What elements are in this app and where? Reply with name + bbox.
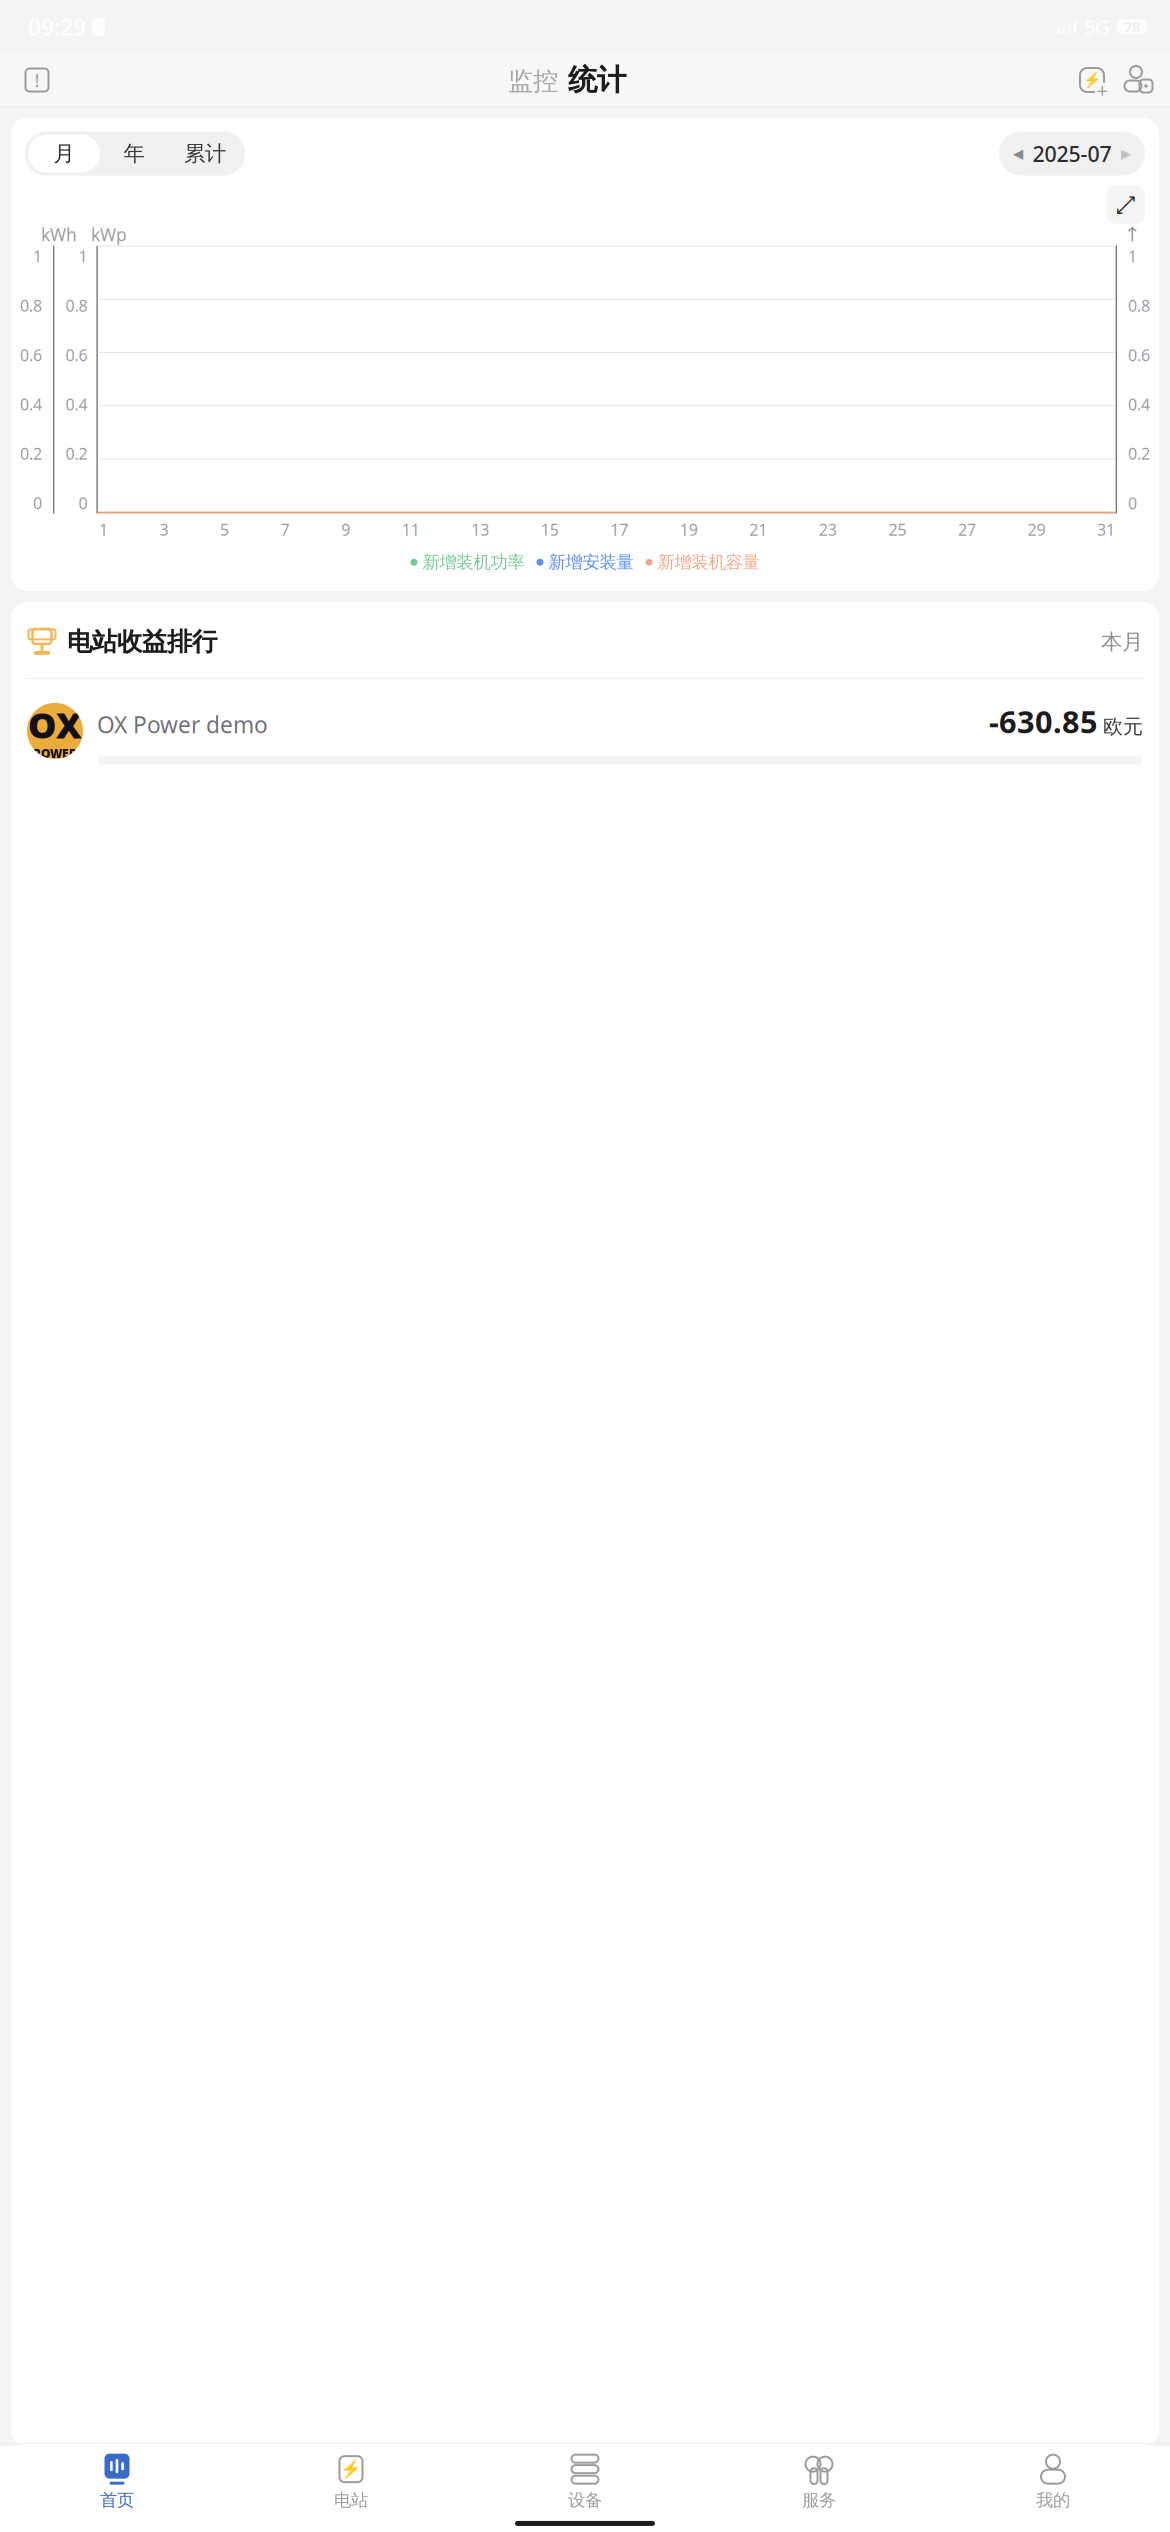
staticText: 电站收益排行 <box>67 626 217 657</box>
staticText: 欧元 <box>1103 714 1143 739</box>
staticText: 31 <box>1097 519 1115 540</box>
button[interactable]: 服务 <box>702 2452 936 2513</box>
staticText: ↙ <box>1114 199 1129 218</box>
button[interactable]: 设备 <box>468 2452 702 2513</box>
staticText: 0.6 <box>20 344 42 365</box>
staticText: 0 <box>1128 492 1137 514</box>
staticText: 0.2 <box>1128 443 1150 464</box>
staticText: 首页 <box>100 2490 134 2511</box>
staticText: 0.8 <box>20 295 42 316</box>
staticText: 新增安装量 <box>548 552 633 573</box>
staticText: 电站 <box>334 2490 368 2511</box>
staticText: 7 <box>281 519 290 540</box>
staticText: ⚡ <box>340 2459 362 2479</box>
staticText: 新增装机容量 <box>657 552 759 573</box>
staticText: 1 <box>99 519 108 540</box>
staticText: 19 <box>680 519 698 540</box>
button[interactable]: 本月 <box>1101 629 1143 655</box>
staticText: 0 <box>78 492 87 514</box>
staticText: 17 <box>610 519 628 540</box>
staticText: 0.6 <box>1128 344 1150 365</box>
staticText: 0.6 <box>65 344 87 365</box>
staticText: OX <box>28 700 82 748</box>
button[interactable]: 年 <box>100 135 168 173</box>
staticText: ⚡ <box>1083 72 1101 88</box>
button[interactable]: 告警 <box>16 61 58 99</box>
staticText: 5G <box>1084 14 1110 40</box>
staticText: 月 <box>53 140 74 167</box>
staticText: 1 <box>1128 246 1137 267</box>
staticText: 设备 <box>568 2490 602 2511</box>
staticText: 23 <box>819 519 837 540</box>
button[interactable]: 月 <box>28 135 100 173</box>
staticText: 统计 <box>568 62 626 98</box>
staticText: POWER <box>33 745 77 761</box>
staticText: 09:29 <box>28 12 86 42</box>
staticText: 5 <box>220 519 229 540</box>
staticText: ↑ <box>1124 223 1141 246</box>
staticText: 78 <box>1124 17 1140 37</box>
button[interactable]: 监控 <box>508 66 558 97</box>
staticText: 0.4 <box>65 394 87 415</box>
staticText: OX Power demo <box>97 709 268 739</box>
button[interactable]: ⚡ <box>234 2452 468 2513</box>
button[interactable]: 首页 <box>0 2452 234 2513</box>
staticText: -630.85 <box>989 701 1098 742</box>
staticText: 0.4 <box>1128 394 1150 415</box>
staticText: 1 <box>78 246 87 267</box>
staticText: 13 <box>471 519 489 540</box>
staticText: 21 <box>749 519 767 540</box>
staticText: 0.8 <box>65 295 87 316</box>
staticText: 2025-07 <box>1032 139 1111 168</box>
staticText: ! <box>34 68 39 92</box>
staticText: 11 <box>402 519 420 540</box>
button[interactable]: 我的 <box>936 2452 1170 2513</box>
button[interactable]: 统计 <box>568 62 626 98</box>
staticText: 9 <box>341 519 350 540</box>
staticText: 0.2 <box>20 443 42 464</box>
staticText: 监控 <box>508 66 558 97</box>
staticText: 0.8 <box>1128 295 1150 316</box>
staticText: ▶ <box>1121 146 1131 161</box>
button[interactable]: 用户设置 <box>1122 64 1154 96</box>
staticText: 0 <box>33 492 42 514</box>
staticText: ◀ <box>1013 146 1023 161</box>
button[interactable]: OX <box>11 679 1159 783</box>
staticText: 15 <box>541 519 559 540</box>
button[interactable]: ◀ <box>999 132 1145 176</box>
button[interactable]: 添加电站 <box>1076 64 1108 96</box>
staticText: kWp <box>91 223 127 246</box>
staticText: 服务 <box>802 2490 836 2511</box>
staticText: 年 <box>123 140 144 167</box>
staticText: 0.4 <box>20 394 42 415</box>
staticText: 本月 <box>1101 629 1143 655</box>
staticText: 29 <box>1027 519 1045 540</box>
staticText: 27 <box>958 519 976 540</box>
staticText: kWh <box>41 223 77 246</box>
staticText: 0.2 <box>65 443 87 464</box>
staticText: 我的 <box>1036 2490 1070 2511</box>
staticText: ↗ <box>1122 191 1137 210</box>
button[interactable]: 累计 <box>168 135 242 173</box>
staticText: 累计 <box>184 140 226 167</box>
staticText: 1 <box>33 246 42 267</box>
button[interactable]: 全屏 <box>1107 186 1145 224</box>
staticText: 新增装机功率 <box>422 552 524 573</box>
staticText: 25 <box>888 519 906 540</box>
staticText: 3 <box>159 519 168 540</box>
staticText: + <box>1096 77 1107 103</box>
